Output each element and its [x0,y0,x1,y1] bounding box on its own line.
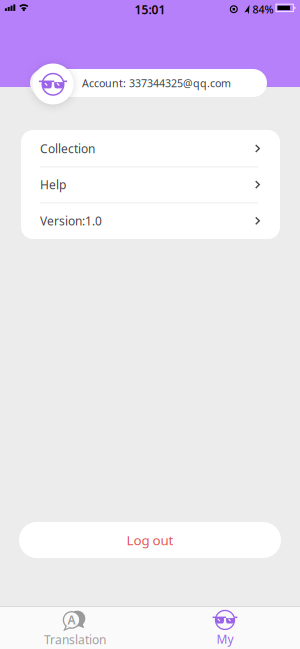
staticText: My [216,631,233,647]
staticText: 84% [252,2,273,16]
staticText: Version:1.0 [40,213,102,229]
staticText: Account: 337344325@qq.com [82,76,231,90]
staticText: A [68,612,76,628]
staticText: Help [40,177,66,192]
button[interactable]: A [0,607,150,649]
button[interactable]: Account: 337344325@qq.com [30,69,267,97]
button[interactable]: Help [21,167,280,203]
staticText: Translation [44,631,106,647]
button[interactable]: Collection [21,130,280,166]
staticText: Log out [126,531,173,549]
button[interactable]: Version:1.0 [21,203,280,239]
button[interactable]: My [150,607,300,649]
staticText: Collection [40,140,95,156]
staticText: 15:01 [134,1,165,17]
button[interactable]: Log out [19,522,281,558]
